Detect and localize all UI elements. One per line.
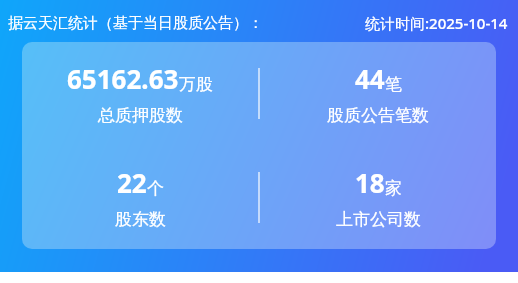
staticText: 家 [385,178,402,199]
button[interactable]: 22 [22,145,258,249]
staticText: 44 [355,61,385,96]
staticText: 股东数 [115,209,166,230]
staticText: 65162.63 [67,61,179,96]
staticText: 个 [147,178,164,199]
staticText: 上市公司数 [336,209,421,230]
staticText: 据云天汇统计（基于当日股质公告）： [8,14,263,33]
button[interactable]: 65162.63 [22,42,258,145]
button[interactable]: 18 [260,145,496,249]
staticText: 总质押股数 [98,105,183,126]
button[interactable]: 44 [260,42,496,145]
staticText: 18 [355,165,385,200]
staticText: 统计时间:2025-10-14 [365,13,508,33]
staticText: 笔 [385,74,402,95]
staticText: 股质公告笔数 [327,105,429,126]
staticText: 22 [117,165,147,200]
staticText: 万股 [179,74,213,95]
